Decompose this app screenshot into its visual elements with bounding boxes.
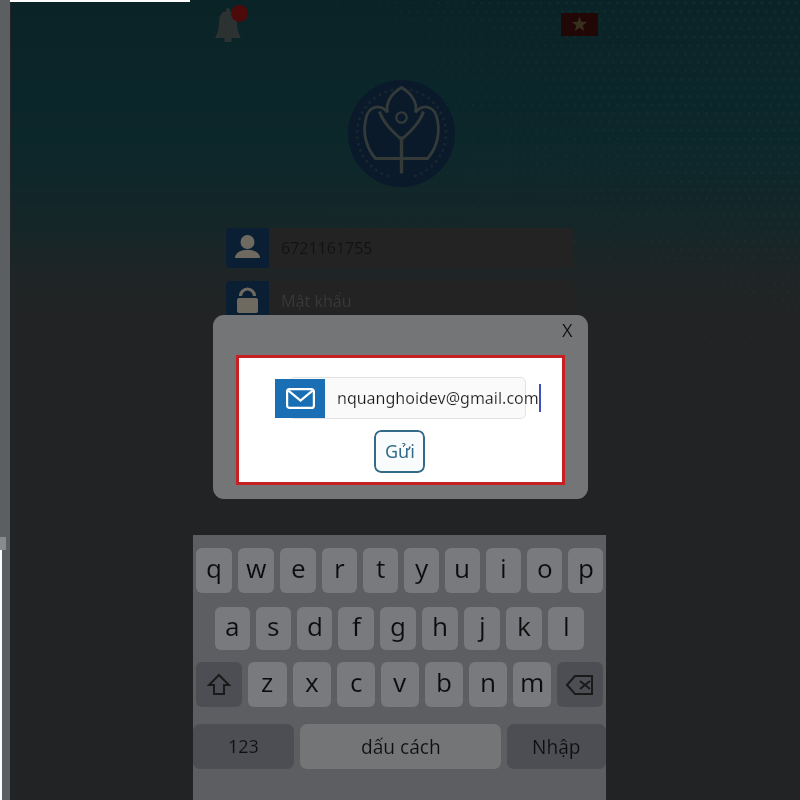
button[interactable] [289, 377, 526, 419]
button[interactable]: h [422, 607, 458, 650]
staticText: b [436, 664, 452, 699]
staticText: s [267, 608, 280, 643]
staticText: h [432, 608, 449, 643]
staticText: w [246, 550, 267, 585]
staticText: c [350, 664, 363, 699]
staticText: f [352, 608, 361, 643]
staticText: r [334, 550, 345, 585]
staticText: Gửi [385, 439, 415, 464]
button[interactable]: k [506, 607, 542, 650]
button[interactable]: Gửi [374, 430, 425, 473]
button[interactable]: i [486, 548, 521, 593]
button[interactable]: o [527, 548, 562, 593]
button[interactable]: Backspace [557, 662, 603, 707]
button[interactable]: v [381, 662, 419, 707]
button[interactable]: n [469, 662, 507, 707]
button[interactable]: c [337, 662, 375, 707]
button[interactable]: Language [561, 13, 598, 36]
button[interactable]: 6721161755 [226, 228, 574, 268]
button[interactable]: Notifications [203, 2, 247, 46]
staticText: q [206, 550, 222, 585]
staticText: t [376, 550, 386, 585]
staticText: d [307, 608, 323, 643]
button[interactable]: dấu cách [300, 724, 501, 769]
button[interactable]: p [568, 548, 603, 593]
button[interactable]: Nhập [507, 724, 606, 769]
staticText: nquanghoidev@gmail.com [337, 387, 539, 409]
staticText: n [480, 664, 497, 699]
button[interactable]: z [248, 662, 287, 707]
staticText: dấu cách [361, 734, 441, 760]
button[interactable]: x [293, 662, 331, 707]
button[interactable]: Shift [196, 662, 242, 707]
button[interactable]: g [380, 607, 416, 650]
button[interactable]: b [425, 662, 463, 707]
staticText: z [261, 664, 274, 699]
staticText: v [393, 664, 407, 699]
staticText: j [479, 608, 486, 643]
staticText: y [415, 550, 429, 585]
button[interactable]: a [215, 607, 250, 650]
button[interactable]: f [338, 607, 374, 650]
staticText: e [291, 550, 306, 585]
button[interactable]: j [464, 607, 500, 650]
staticText: 6721161755 [281, 237, 373, 259]
staticText: g [390, 608, 406, 643]
staticText: 123 [228, 734, 259, 759]
staticText: p [578, 550, 594, 585]
button[interactable]: y [404, 548, 439, 593]
button[interactable]: t [363, 548, 398, 593]
staticText: o [537, 550, 553, 585]
staticText: u [454, 550, 471, 585]
button[interactable]: d [297, 607, 332, 650]
staticText: i [500, 550, 507, 585]
button[interactable]: q [196, 548, 232, 593]
button[interactable]: w [238, 548, 274, 593]
staticText: a [225, 608, 240, 643]
button[interactable]: 123 [193, 724, 294, 769]
button[interactable]: l [548, 607, 584, 650]
button[interactable]: Close [552, 315, 582, 345]
staticText: m [520, 664, 545, 699]
button[interactable]: u [445, 548, 480, 593]
button[interactable]: r [322, 548, 357, 593]
staticText: Nhập [532, 734, 581, 760]
button[interactable]: m [513, 662, 551, 707]
staticText: x [305, 664, 319, 699]
button[interactable]: e [280, 548, 316, 593]
button[interactable]: s [256, 607, 291, 650]
staticText: k [517, 608, 531, 643]
staticText: Mật khẩu [281, 290, 352, 312]
staticText: l [563, 608, 570, 643]
staticText: X [562, 318, 573, 343]
button[interactable]: Mật khẩu [226, 281, 574, 321]
